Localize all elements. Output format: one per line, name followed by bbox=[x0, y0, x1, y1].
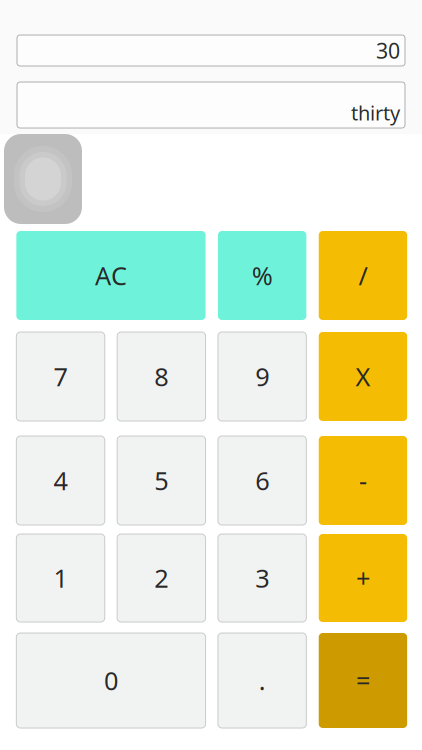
button[interactable]: 6 bbox=[218, 436, 306, 525]
staticText: 2 bbox=[154, 561, 168, 595]
staticText: AC bbox=[95, 259, 127, 292]
button[interactable]: 0 bbox=[16, 633, 205, 728]
button[interactable]: 3 bbox=[218, 534, 306, 622]
staticText: thirty bbox=[351, 99, 400, 126]
staticText: 30 bbox=[376, 36, 400, 65]
button[interactable]: . bbox=[218, 633, 306, 728]
staticText: = bbox=[356, 664, 370, 697]
staticText: - bbox=[359, 464, 367, 497]
button[interactable]: % bbox=[218, 231, 306, 320]
button[interactable]: - bbox=[319, 436, 407, 525]
button[interactable]: 5 bbox=[117, 436, 206, 525]
staticText: 1 bbox=[53, 561, 67, 595]
staticText: X bbox=[355, 360, 370, 393]
staticText: 6 bbox=[255, 464, 269, 497]
staticText: % bbox=[252, 259, 273, 292]
staticText: 7 bbox=[53, 360, 67, 393]
staticText: 0 bbox=[104, 664, 118, 697]
button[interactable]: 9 bbox=[218, 332, 306, 421]
staticText: 5 bbox=[154, 464, 168, 497]
button[interactable]: Speak bbox=[4, 134, 82, 224]
button[interactable]: 2 bbox=[117, 534, 206, 622]
button[interactable]: + bbox=[319, 534, 407, 622]
button[interactable]: / bbox=[319, 231, 407, 320]
button[interactable]: X bbox=[319, 332, 407, 421]
staticText: / bbox=[358, 259, 367, 292]
button[interactable]: AC bbox=[16, 231, 205, 320]
button[interactable]: 8 bbox=[117, 332, 206, 421]
staticText: 3 bbox=[255, 561, 269, 595]
staticText: . bbox=[259, 664, 266, 697]
staticText: 4 bbox=[53, 464, 67, 497]
button[interactable]: 4 bbox=[16, 436, 105, 525]
button[interactable]: 1 bbox=[16, 534, 105, 622]
button[interactable]: = bbox=[319, 633, 407, 728]
staticText: + bbox=[356, 561, 370, 595]
staticText: 8 bbox=[154, 360, 168, 393]
button[interactable]: 7 bbox=[16, 332, 105, 421]
staticText: 9 bbox=[255, 360, 269, 393]
